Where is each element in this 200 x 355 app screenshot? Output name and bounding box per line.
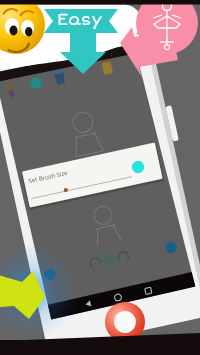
- button[interactable]: Coloring book app preview: [0, 0, 200, 355]
